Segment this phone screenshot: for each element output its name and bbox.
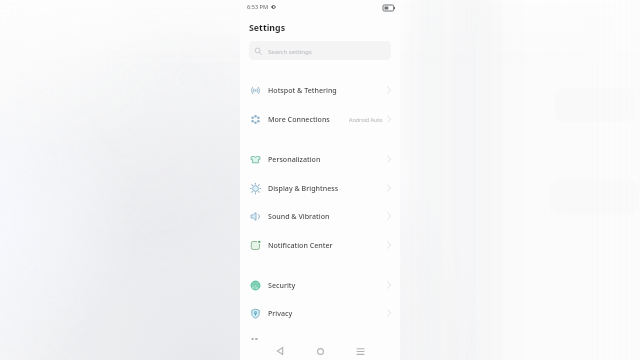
staticText: Settings: [249, 22, 286, 34]
button[interactable]: Personalization: [240, 147, 400, 171]
staticText: Display & Brightness: [268, 183, 339, 193]
button[interactable]: Display & Brightness: [240, 176, 400, 200]
staticText: 6:53 PM: [247, 3, 269, 11]
staticText: Security: [268, 280, 296, 290]
button[interactable]: Back: [271, 342, 289, 360]
staticText: Hotspot & Tethering: [268, 85, 337, 95]
button[interactable]: Hotspot & Tethering: [240, 78, 400, 102]
button[interactable]: Recent apps: [351, 342, 369, 360]
button[interactable]: Search settings: [249, 41, 391, 60]
button[interactable]: Privacy: [240, 301, 400, 325]
button[interactable]: More Connections: [240, 107, 400, 131]
staticText: Privacy: [268, 308, 293, 318]
staticText: Search settings: [268, 47, 312, 55]
button[interactable]: Security: [240, 273, 400, 297]
staticText: More Connections: [268, 114, 330, 124]
staticText: Android Auto: [349, 116, 383, 123]
staticText: Personalization: [268, 154, 321, 164]
button[interactable]: Notification Center: [240, 233, 400, 257]
staticText: Sound & Vibration: [268, 211, 330, 221]
button[interactable]: Sound & Vibration: [240, 204, 400, 228]
staticText: Notification Center: [268, 240, 333, 250]
button[interactable]: Home: [311, 342, 329, 360]
